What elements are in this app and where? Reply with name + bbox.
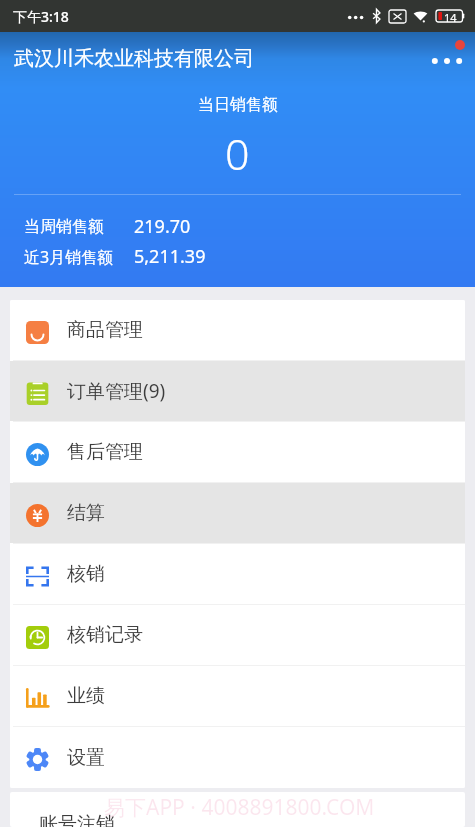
staticText: 核销 bbox=[67, 562, 105, 586]
button[interactable]: 账号注销 bbox=[10, 792, 465, 827]
staticText: 设置 bbox=[67, 746, 105, 770]
button[interactable]: 核销 bbox=[10, 544, 465, 604]
staticText: 订单管理(9) bbox=[67, 378, 166, 404]
staticText: 5,211.39 bbox=[134, 244, 206, 269]
button[interactable]: 商品管理 bbox=[10, 300, 465, 360]
button[interactable]: More options bbox=[425, 36, 469, 80]
button[interactable]: 结算 bbox=[10, 483, 465, 543]
staticText: 0 bbox=[225, 124, 250, 183]
staticText: 业绩 bbox=[67, 684, 105, 708]
staticText: 易下APP · 4008891800.COM bbox=[104, 793, 375, 822]
staticText: 219.70 bbox=[134, 214, 191, 239]
staticText: 武汉川禾农业科技有限公司 bbox=[14, 46, 254, 71]
staticText: 结算 bbox=[67, 501, 105, 525]
staticText: 核销记录 bbox=[67, 623, 143, 647]
button[interactable]: 业绩 bbox=[10, 666, 465, 726]
button[interactable]: 设置 bbox=[10, 727, 465, 788]
staticText: 账号注销 bbox=[39, 812, 115, 827]
staticText: 当日销售额 bbox=[198, 95, 278, 115]
button[interactable]: 售后管理 bbox=[10, 422, 465, 482]
staticText: 下午3:18 bbox=[13, 7, 69, 26]
button[interactable]: 核销记录 bbox=[10, 605, 465, 665]
staticText: 近3月销售额 bbox=[24, 246, 114, 268]
staticText: 14 bbox=[444, 10, 457, 22]
button[interactable]: 订单管理(9) bbox=[10, 361, 465, 421]
staticText: 商品管理 bbox=[67, 318, 143, 342]
staticText: 售后管理 bbox=[67, 440, 143, 464]
staticText: 当周销售额 bbox=[24, 217, 104, 237]
